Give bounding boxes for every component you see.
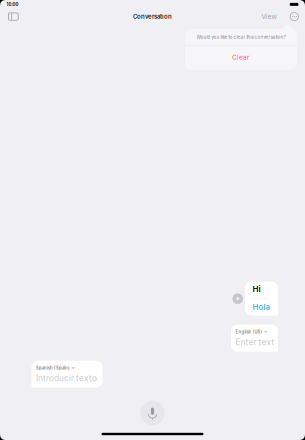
button[interactable]: View: [259, 9, 280, 24]
staticText: Clear: [232, 53, 250, 61]
staticText: Conversation: [133, 13, 172, 20]
staticText: Would you like to clear this conversatio…: [196, 34, 285, 40]
button[interactable]: Show Sidebar: [0, 9, 22, 24]
staticText: English (US): [236, 329, 263, 334]
staticText: Introducir texto: [36, 373, 97, 383]
button[interactable]: Clear: [185, 46, 297, 71]
staticText: Hi: [253, 284, 261, 294]
staticText: View: [262, 13, 277, 20]
staticText: Hola: [253, 302, 271, 312]
button[interactable]: More: [288, 8, 301, 25]
staticText: Enter text: [236, 337, 275, 347]
staticText: 10:00: [7, 2, 19, 7]
staticText: Spanish (Spain): [36, 365, 70, 370]
button[interactable]: Record: [140, 401, 165, 425]
